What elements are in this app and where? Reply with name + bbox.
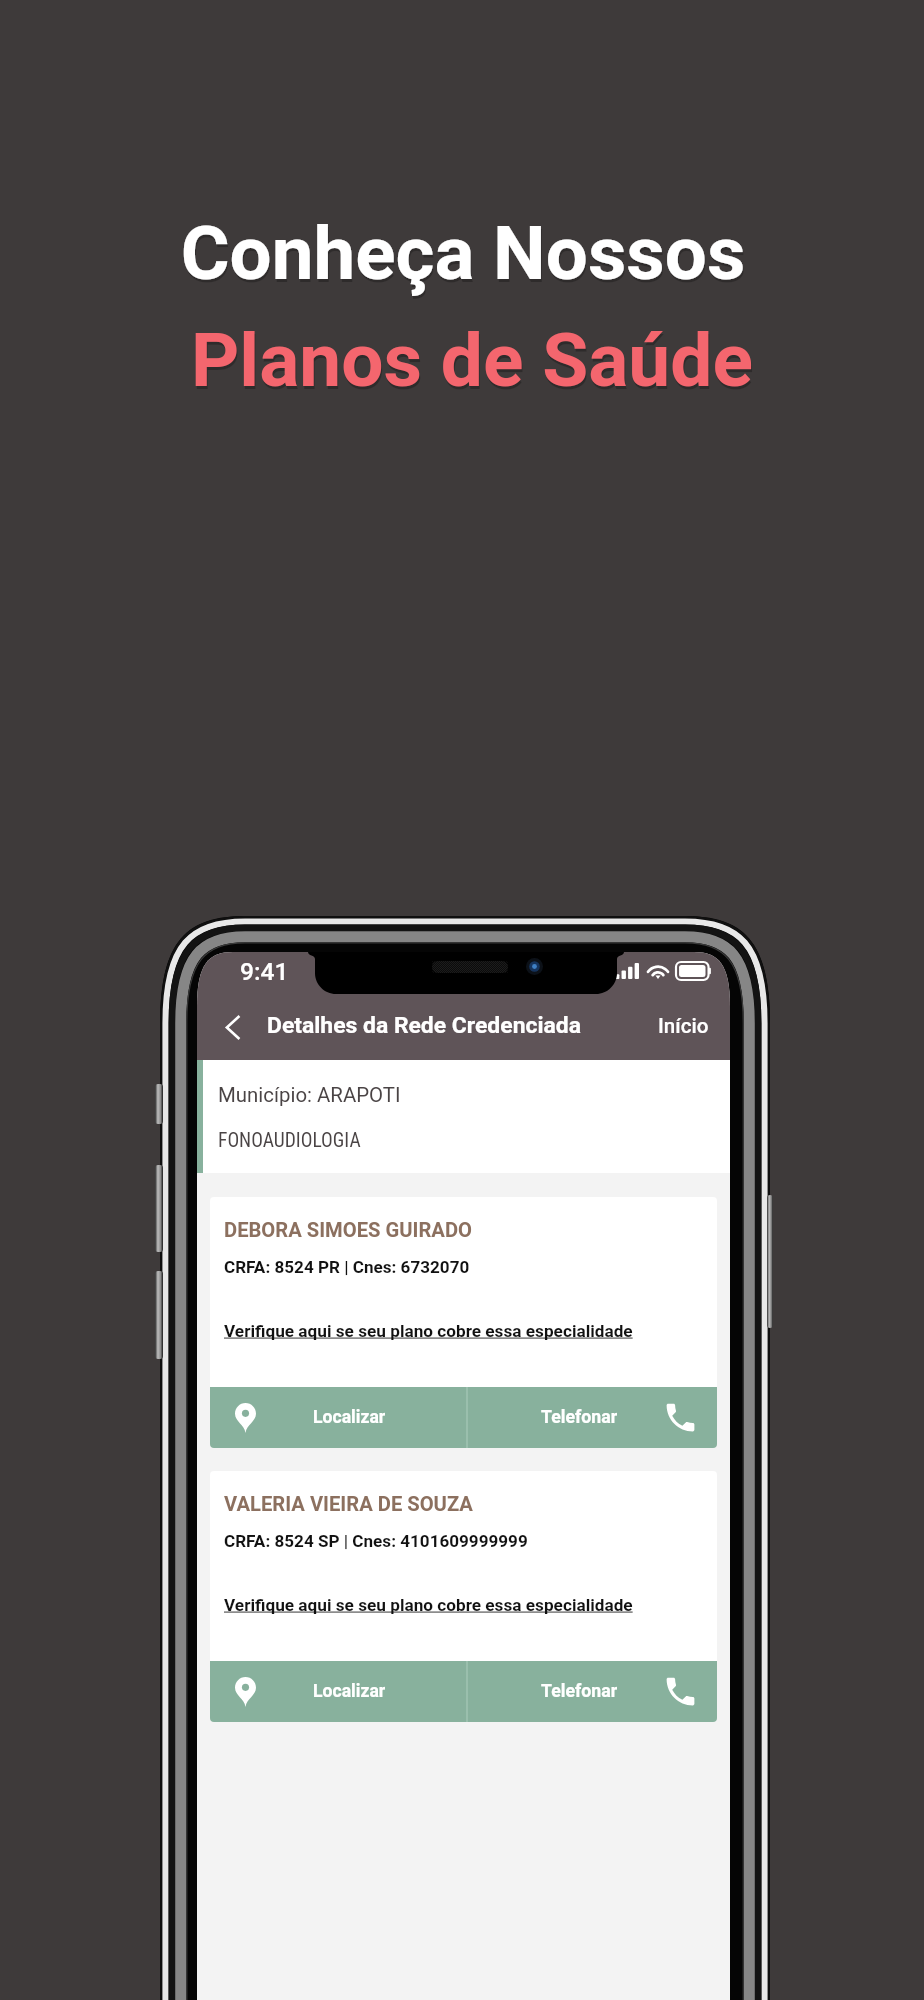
button[interactable]: Localizar [210, 1387, 466, 1448]
staticText: Telefonar [541, 1681, 618, 1702]
staticText: Detalhes da Rede Credenciada [267, 1012, 581, 1039]
button[interactable]: Início [636, 1005, 730, 1049]
staticText: Início [658, 1014, 709, 1038]
staticText: Conheça Nossos [2, 213, 924, 300]
button[interactable]: Back [209, 1003, 257, 1051]
staticText: VALERIA VIEIRA DE SOUZA [224, 1492, 473, 1516]
button[interactable]: Verifique aqui se seu plano cobre essa e… [224, 1595, 633, 1615]
button[interactable]: Telefonar [468, 1661, 717, 1722]
staticText: Localizar [313, 1407, 386, 1428]
staticText: Planos de Saúde [11, 320, 924, 408]
staticText: Planos de Saúde [10, 317, 924, 405]
staticText: 9:41 [240, 957, 289, 986]
staticText: FONOAUDIOLOGIA [218, 1129, 361, 1152]
staticText: Localizar [313, 1681, 386, 1702]
staticText: Conheça Nossos [1, 210, 924, 297]
staticText: Telefonar [541, 1407, 618, 1428]
staticText: DEBORA SIMOES GUIRADO [224, 1218, 473, 1242]
button[interactable]: Localizar [210, 1661, 466, 1722]
button[interactable]: Telefonar [468, 1387, 717, 1448]
staticText: CRFA: 8524 SP | Cnes: 4101609999999 [224, 1531, 528, 1551]
staticText: CRFA: 8524 PR | Cnes: 6732070 [224, 1257, 470, 1277]
button[interactable]: Verifique aqui se seu plano cobre essa e… [224, 1321, 633, 1341]
staticText: Município: ARAPOTI [218, 1083, 401, 1107]
